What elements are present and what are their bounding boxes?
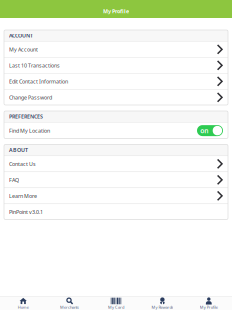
staticText: Learn More bbox=[9, 192, 37, 199]
button[interactable]: My Card bbox=[93, 297, 139, 310]
staticText: My Account bbox=[9, 46, 38, 53]
button[interactable]: Find My Location, on bbox=[197, 125, 223, 136]
button[interactable]: My Rewards bbox=[139, 297, 186, 310]
staticText: Edit Contact Information bbox=[9, 78, 68, 85]
staticText: My Card bbox=[108, 305, 124, 310]
staticText: Contact Us bbox=[9, 160, 36, 167]
button[interactable]: Edit Contact Information bbox=[4, 74, 228, 89]
button[interactable]: My Account bbox=[4, 42, 228, 57]
button[interactable]: My Profile bbox=[186, 297, 232, 310]
staticText: Home bbox=[18, 305, 29, 310]
button[interactable]: FAQ bbox=[4, 172, 228, 187]
staticText: My Rewards bbox=[151, 305, 173, 310]
button[interactable]: Change Password bbox=[4, 90, 228, 105]
button[interactable]: Contact Us bbox=[4, 156, 228, 171]
button[interactable]: Learn More bbox=[4, 188, 228, 203]
staticText: ABOUT bbox=[9, 146, 28, 154]
staticText: Merchants bbox=[60, 305, 79, 310]
button[interactable]: Merchants bbox=[46, 297, 93, 310]
staticText: My Profile bbox=[103, 7, 129, 15]
staticText: PREFERENCES bbox=[9, 113, 43, 120]
staticText: Change Password bbox=[9, 94, 52, 101]
staticText: PinPoint v3.0.1 bbox=[9, 208, 43, 215]
button[interactable]: Home bbox=[0, 297, 46, 310]
staticText: Last 10 Transactions bbox=[9, 62, 60, 69]
staticText: on bbox=[200, 126, 208, 135]
staticText: Find My Location bbox=[9, 127, 50, 134]
staticText: ACCOUNT bbox=[9, 32, 33, 39]
button[interactable]: PinPoint v3.0.1 bbox=[4, 204, 228, 219]
staticText: FAQ bbox=[9, 176, 19, 183]
staticText: My Profile bbox=[200, 305, 218, 310]
button[interactable]: Last 10 Transactions bbox=[4, 58, 228, 73]
